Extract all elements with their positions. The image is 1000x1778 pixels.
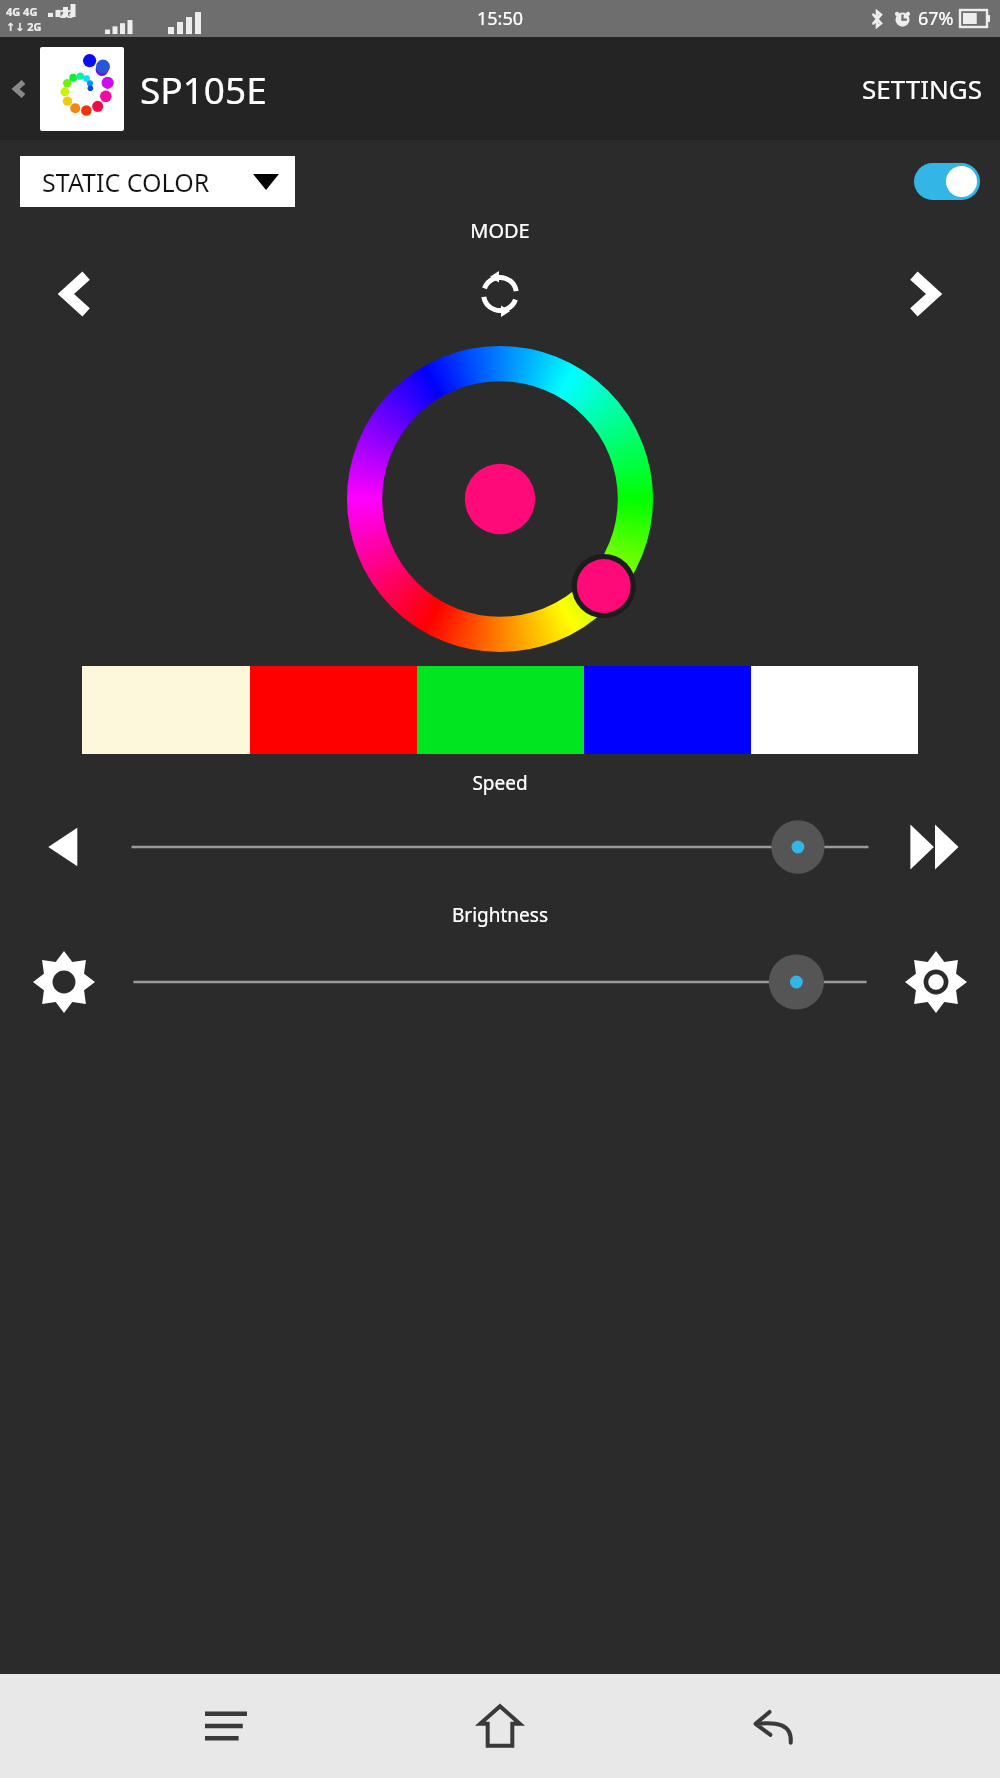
button[interactable]: Slower (22, 804, 108, 890)
button[interactable]: Back (726, 1678, 822, 1774)
button[interactable]: Back (0, 37, 40, 140)
staticText: 67% (918, 6, 954, 31)
button[interactable]: Home (452, 1678, 548, 1774)
staticText: SETTINGS (862, 71, 982, 106)
staticText: Speed (0, 770, 1000, 796)
button[interactable]: SETTINGS (680, 37, 1000, 140)
button[interactable]: Menu (178, 1678, 274, 1774)
button[interactable]: STATIC COLOR (20, 156, 295, 207)
staticText: SP105E (140, 64, 267, 114)
staticText: Brightness (0, 902, 1000, 928)
staticText: MODE (0, 217, 1000, 244)
button[interactable]: Auto cycle modes (464, 258, 536, 330)
button[interactable] (108, 804, 892, 890)
staticText: STATIC COLOR (42, 165, 210, 199)
button[interactable]: Faster (892, 804, 978, 890)
staticText: 4G 4G (6, 4, 38, 19)
button[interactable]: Decrease brightness (18, 936, 110, 1028)
staticText: 2G (60, 7, 73, 21)
button[interactable] (110, 936, 890, 1028)
button[interactable]: Increase brightness (890, 936, 982, 1028)
button[interactable]: Previous mode (40, 258, 112, 330)
button[interactable]: Power toggle (914, 163, 980, 200)
button[interactable]: Next mode (888, 258, 960, 330)
staticText: ↑↓ 2G (6, 19, 42, 34)
button[interactable]: Color wheel (347, 346, 653, 652)
staticText: 15:50 (477, 6, 524, 31)
